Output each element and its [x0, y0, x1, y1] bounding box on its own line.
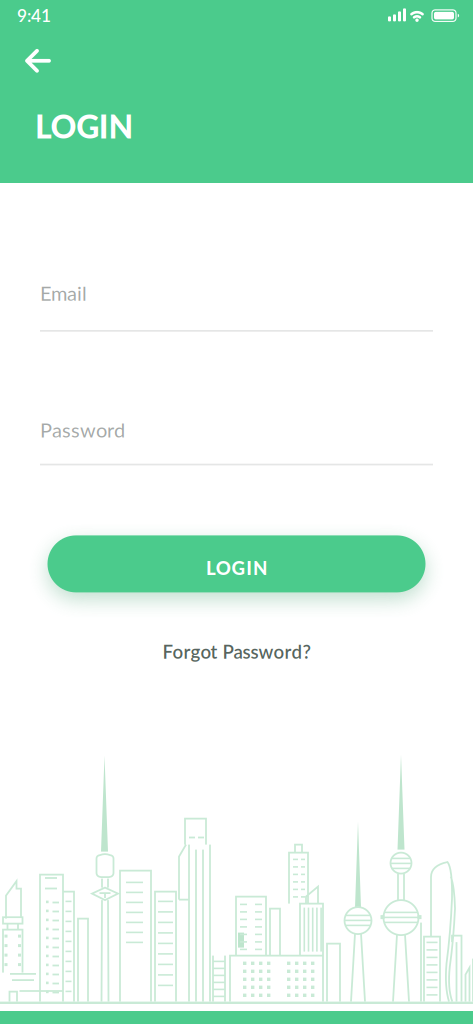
staticText: Password [40, 418, 125, 442]
button[interactable]: Back [0, 26, 52, 73]
button[interactable]: Forgot Password? [162, 640, 310, 663]
staticText: Forgot Password? [162, 640, 310, 663]
staticText: Email [40, 281, 87, 305]
button[interactable]: LOGIN [47, 535, 425, 592]
staticText: LOGIN [206, 557, 267, 579]
staticText: LOGIN [35, 107, 133, 145]
staticText: 9:41 [17, 5, 51, 26]
